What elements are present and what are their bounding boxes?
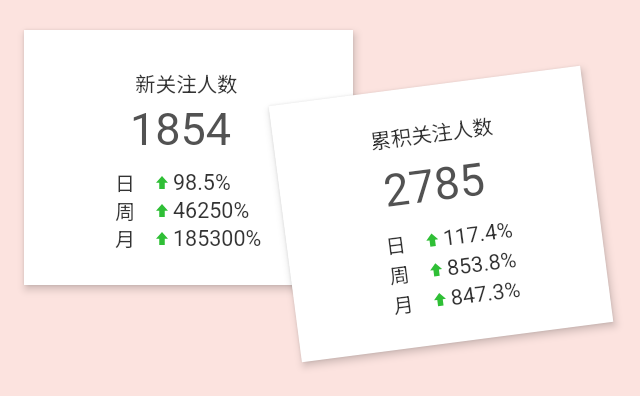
staticText: 周 (388, 259, 411, 290)
staticText: 853.8% (445, 247, 518, 281)
button[interactable]: 周 (387, 244, 518, 290)
other: Increase (425, 233, 439, 247)
other: Increase (429, 262, 443, 277)
staticText: 新关注人数 (22, 68, 351, 98)
staticText: 日 (384, 229, 407, 260)
staticText: 2785 (275, 139, 593, 232)
staticText: 月 (391, 288, 415, 320)
staticText: 185300% (173, 226, 262, 251)
staticText: 117.4% (442, 217, 514, 251)
button[interactable]: 周 (115, 196, 250, 224)
button[interactable]: 新关注人数 (24, 30, 353, 285)
button[interactable]: 累积关注人数 (269, 66, 613, 362)
other: Increase (433, 292, 447, 306)
staticText: 1854 (16, 103, 345, 156)
other: Increase (156, 176, 168, 189)
button[interactable]: 月 (115, 224, 262, 252)
button[interactable]: 日 (115, 168, 231, 196)
staticText: 847.3% (449, 276, 522, 310)
staticText: 98.5% (173, 170, 231, 195)
button[interactable]: 日 (384, 214, 514, 260)
staticText: 周 (115, 196, 135, 224)
other: Increase (156, 204, 168, 217)
staticText: 累积关注人数 (274, 97, 589, 168)
other: Increase (156, 232, 168, 245)
staticText: 日 (115, 168, 135, 196)
staticText: 月 (115, 224, 135, 252)
button[interactable]: 月 (391, 273, 522, 320)
staticText: 46250% (173, 198, 250, 223)
